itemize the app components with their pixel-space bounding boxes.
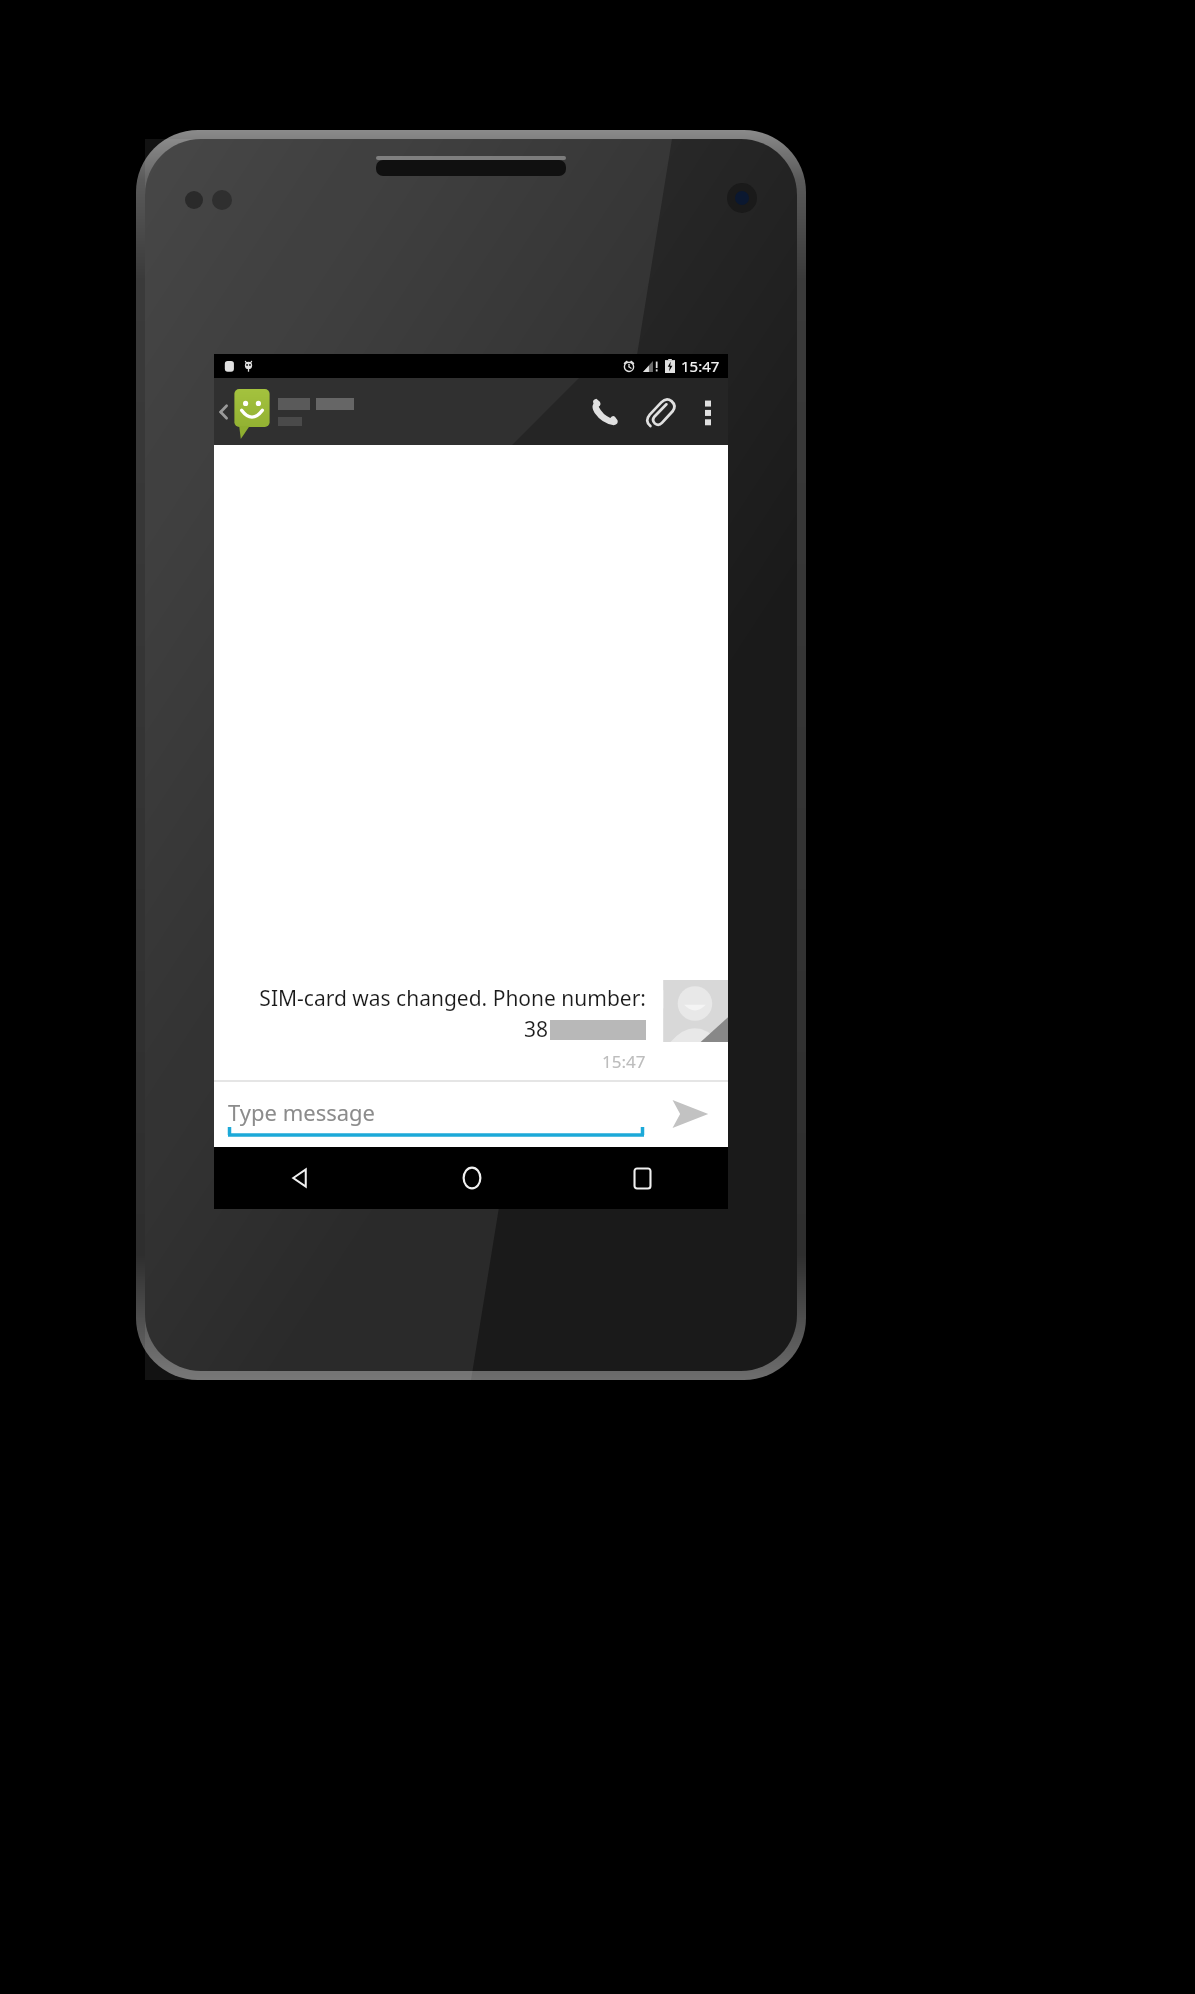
- staticText: 15:47: [681, 356, 720, 376]
- staticText: SIM-card was changed. Phone number:: [259, 984, 646, 1013]
- button[interactable]: SIM-card was changed. Phone number:: [214, 972, 728, 1081]
- button[interactable]: [214, 378, 354, 445]
- button[interactable]: More options: [688, 378, 728, 445]
- button[interactable]: Recent apps: [557, 1147, 728, 1209]
- button[interactable]: Send: [652, 1081, 728, 1147]
- staticText: Type message: [228, 1097, 376, 1127]
- button[interactable]: Attach: [632, 378, 688, 445]
- staticText: 15:47: [602, 1050, 646, 1073]
- button[interactable]: Home: [386, 1147, 557, 1209]
- button[interactable]: Type message: [228, 1081, 644, 1147]
- button[interactable]: Call: [576, 378, 632, 445]
- staticText: 38: [524, 1015, 549, 1044]
- button[interactable]: Back: [214, 1147, 386, 1209]
